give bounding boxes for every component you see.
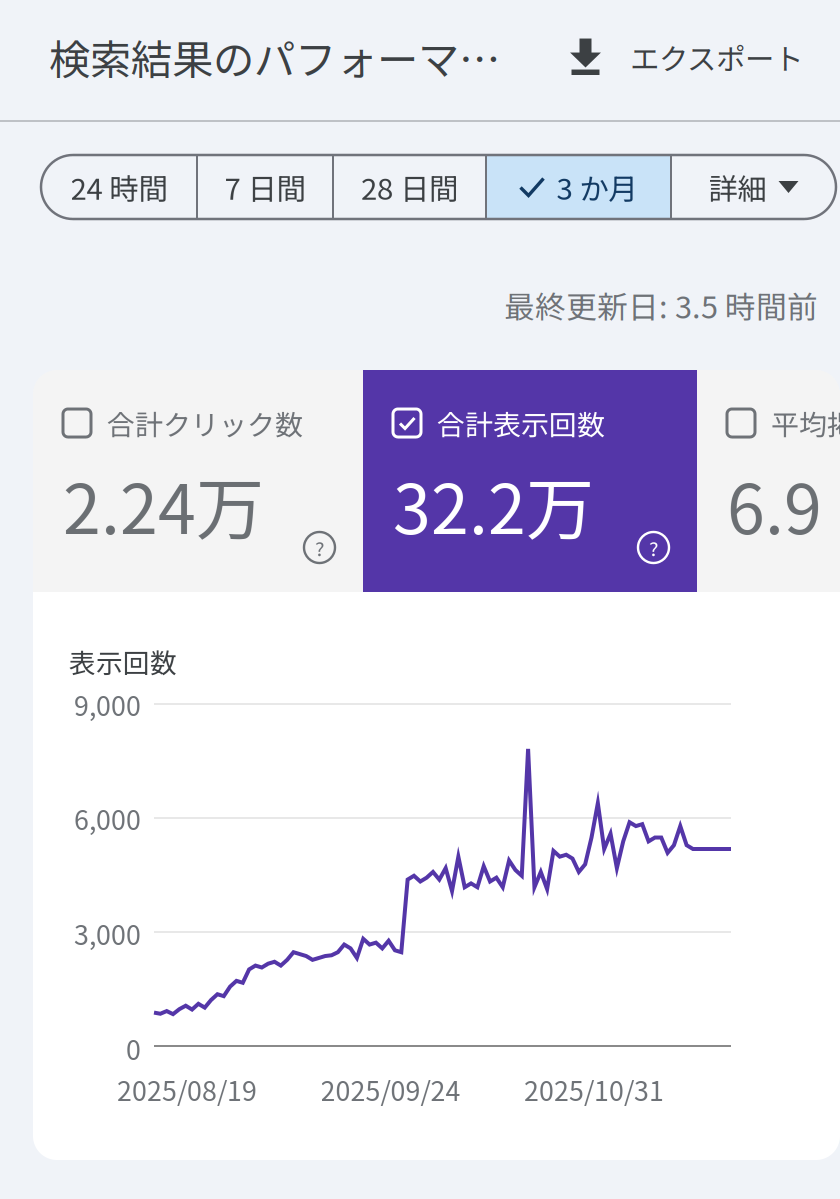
staticText: 24 時間: [70, 166, 167, 208]
staticText: 表示回数: [69, 642, 177, 681]
staticText: 2025/09/24: [320, 1070, 460, 1109]
staticText: 合計表示回数: [437, 403, 605, 443]
staticText: ?: [315, 533, 324, 562]
staticText: 2025/08/19: [117, 1070, 257, 1109]
staticText: 6.9: [727, 455, 822, 553]
staticText: 2.24万: [63, 455, 264, 553]
button[interactable]: 平均掲載順位: [697, 370, 840, 592]
staticText: 0: [126, 1029, 141, 1068]
staticText: エクスポート: [630, 36, 803, 78]
staticText: 7 日間: [224, 166, 305, 208]
staticText: 2025/10/31: [524, 1070, 664, 1109]
staticText: 詳細: [708, 166, 766, 208]
button[interactable]: 7 日間: [198, 155, 332, 219]
button[interactable]: 3 か月: [487, 155, 670, 219]
button[interactable]: 28 日間: [334, 155, 485, 219]
button[interactable]: 24 時間: [42, 155, 196, 219]
button[interactable]: 合計クリック数: [33, 370, 363, 592]
staticText: 28 日間: [361, 166, 458, 208]
button[interactable]: エクスポート: [570, 26, 803, 88]
staticText: 最終更新日: 3.5 時間前: [504, 283, 818, 327]
staticText: 3,000: [74, 914, 141, 953]
staticText: 32.2万: [393, 455, 594, 553]
staticText: 検索結果のパフォーマ…: [49, 27, 500, 87]
button[interactable]: 詳細: [672, 155, 835, 219]
staticText: 平均掲載順位: [771, 403, 840, 443]
staticText: 6,000: [74, 799, 141, 838]
staticText: ?: [649, 533, 658, 562]
staticText: 3 か月: [556, 166, 637, 208]
button[interactable]: 合計表示回数: [363, 370, 697, 592]
staticText: 合計クリック数: [107, 403, 303, 443]
staticText: 9,000: [74, 685, 141, 724]
